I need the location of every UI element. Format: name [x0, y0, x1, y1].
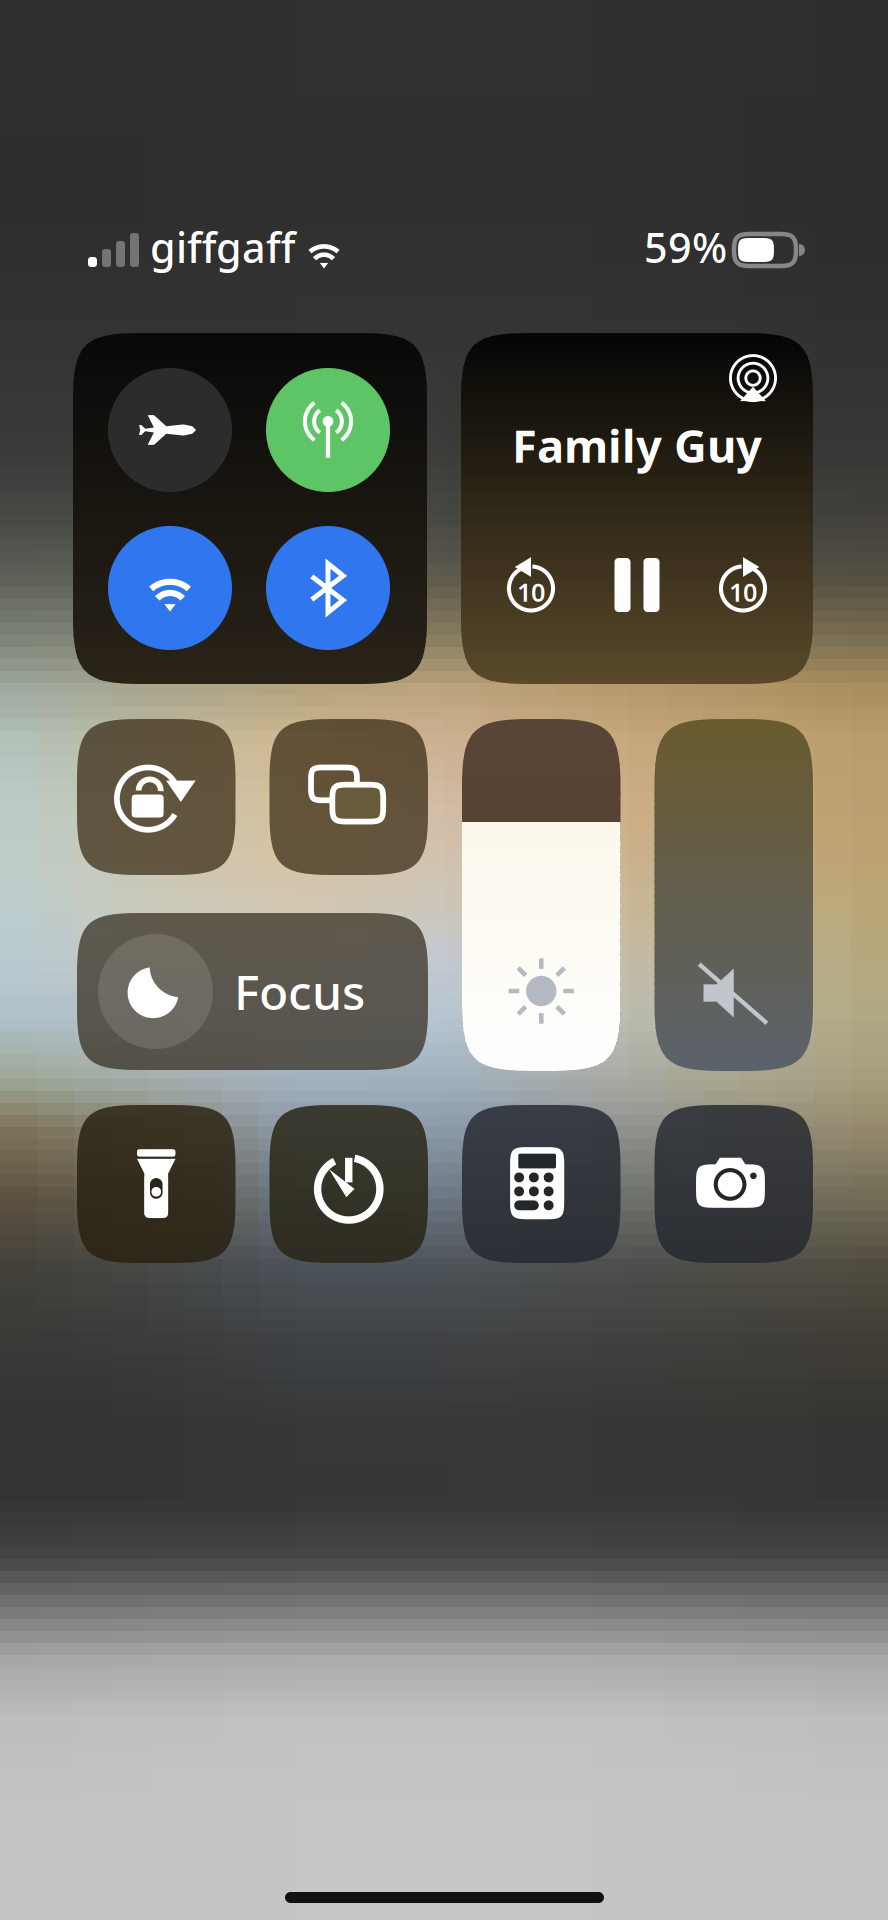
- button[interactable]: Skip forward 10 seconds: [705, 547, 781, 623]
- button[interactable]: Rotation Lock: [77, 719, 235, 875]
- button[interactable]: Cellular Data: [266, 368, 390, 492]
- staticText: Family Guy: [512, 415, 762, 475]
- button[interactable]: Timer: [269, 1105, 428, 1263]
- staticText: 10: [729, 575, 757, 609]
- button[interactable]: Flashlight: [77, 1105, 235, 1263]
- staticText: giffgaff: [150, 220, 295, 274]
- button[interactable]: Airplane Mode: [108, 368, 232, 492]
- button[interactable]: Wi-Fi: [108, 526, 232, 650]
- button[interactable]: Camera: [654, 1105, 813, 1263]
- button[interactable]: Brightness: [462, 719, 620, 1071]
- button[interactable]: Bluetooth: [266, 526, 390, 650]
- button[interactable]: Calculator: [462, 1105, 620, 1263]
- staticText: 10: [517, 575, 545, 609]
- button[interactable]: Focus: [77, 913, 428, 1070]
- button[interactable]: Volume: [654, 719, 813, 1071]
- button[interactable]: AirPlay: [723, 351, 783, 411]
- button[interactable]: Skip back 10 seconds: [493, 547, 569, 623]
- staticText: 59%: [644, 220, 727, 274]
- staticText: Focus: [234, 960, 365, 1023]
- button[interactable]: Screen Mirroring: [269, 719, 428, 875]
- button[interactable]: Pause: [599, 547, 675, 623]
